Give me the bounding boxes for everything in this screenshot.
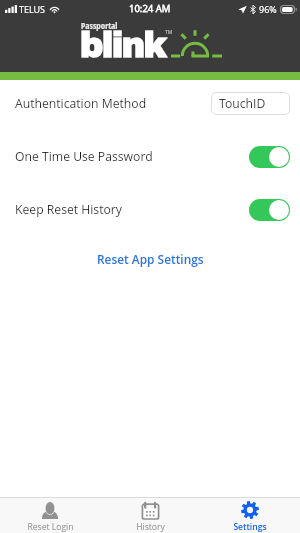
staticText: Reset App Settings: [97, 251, 204, 267]
button[interactable]: Reset Login: [0, 498, 100, 533]
staticText: TELUS: [19, 3, 46, 15]
staticText: Reset Login: [27, 521, 74, 533]
staticText: Authentication Method: [15, 95, 147, 112]
staticText: blink: [80, 26, 166, 64]
staticText: History: [136, 521, 165, 533]
staticText: 96%: [259, 3, 277, 15]
staticText: Passportal: [81, 19, 118, 31]
button[interactable]: Keep Reset History: [0, 183, 300, 236]
staticText: 10:24 AM: [129, 2, 171, 15]
staticText: Settings: [233, 521, 267, 533]
staticText: One Time Use Password: [15, 148, 153, 165]
staticText: TM: [165, 29, 173, 36]
button[interactable]: One Time Use Password: [0, 130, 300, 183]
button[interactable]: Settings: [200, 498, 300, 533]
button[interactable]: TouchID: [211, 92, 290, 115]
staticText: Keep Reset History: [15, 201, 122, 218]
button[interactable]: Toggle: [249, 199, 290, 221]
button[interactable]: Toggle: [249, 146, 290, 168]
button[interactable]: Reset App Settings: [87, 246, 214, 272]
staticText: TouchID: [219, 95, 266, 112]
button[interactable]: Authentication Method: [0, 77, 300, 130]
button[interactable]: History: [100, 498, 200, 533]
